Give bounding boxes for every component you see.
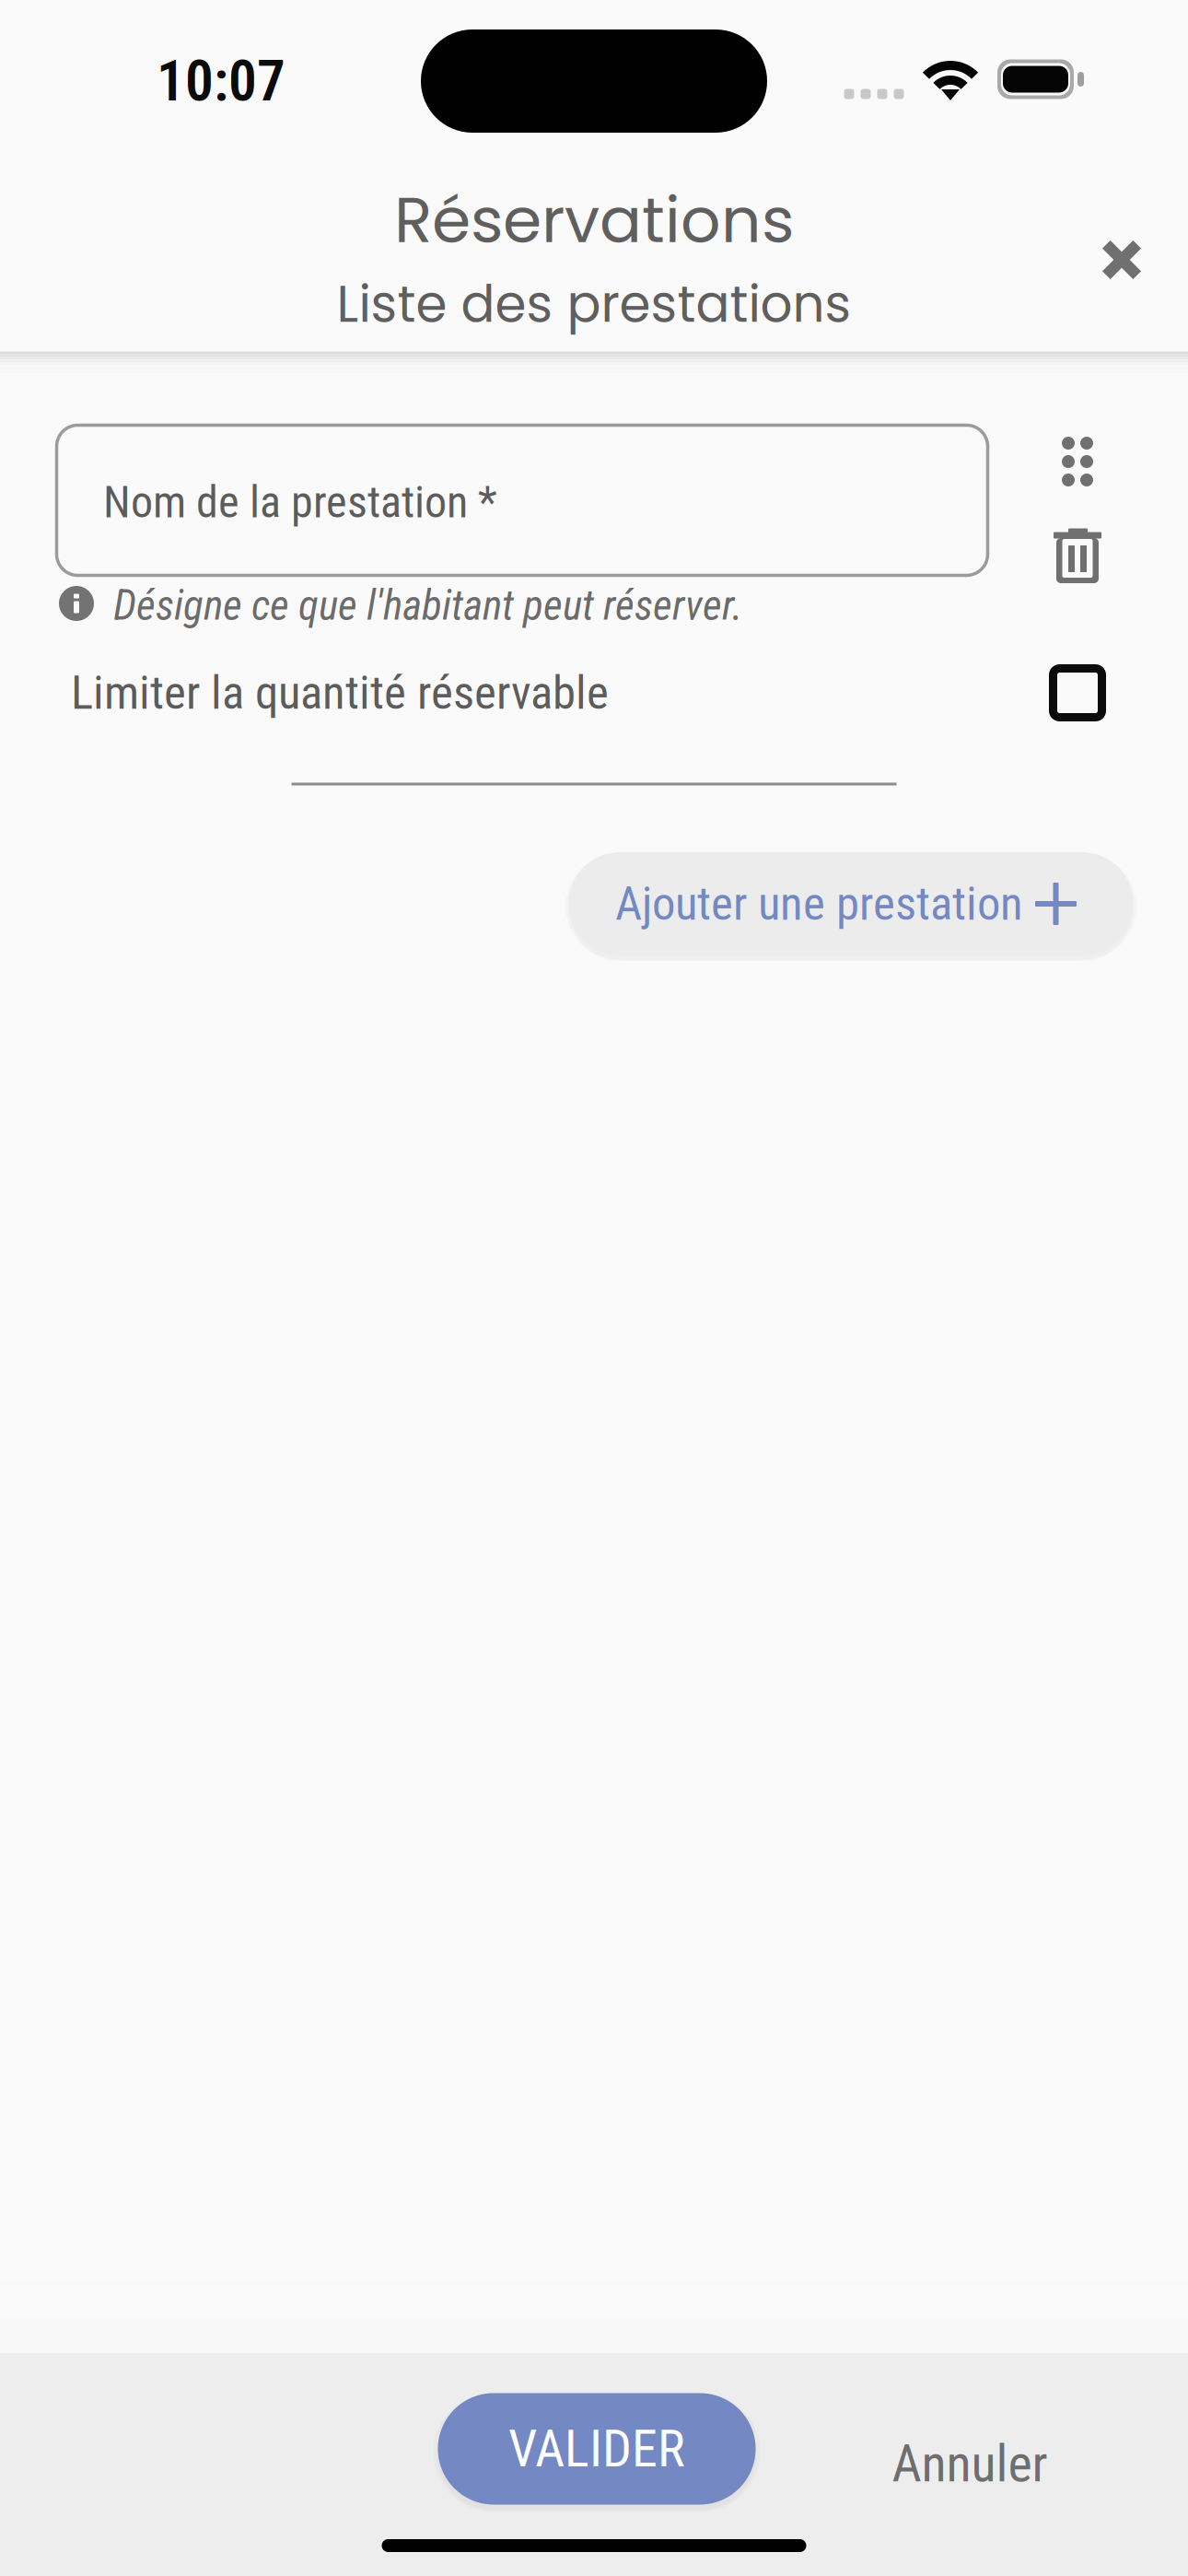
button[interactable]: Ajouter une prestation bbox=[569, 852, 1133, 955]
button[interactable]: Annuler bbox=[859, 2422, 1080, 2505]
staticText: Limiter la quantité réservable bbox=[71, 665, 609, 720]
button[interactable]: VALIDER bbox=[438, 2393, 756, 2505]
button[interactable]: Fermer bbox=[1062, 200, 1182, 320]
staticText: Réservations bbox=[394, 176, 794, 264]
button[interactable]: Réordonner bbox=[1033, 417, 1122, 506]
button[interactable]: Supprimer bbox=[1033, 511, 1122, 600]
staticText: Ajouter une prestation bbox=[615, 876, 1023, 931]
staticText: Désigne ce que l'habitant peut réserver. bbox=[113, 581, 743, 630]
staticText: 10:07 bbox=[157, 48, 285, 114]
staticText: Liste des prestations bbox=[337, 269, 851, 339]
staticText: Annuler bbox=[892, 2433, 1048, 2494]
button[interactable]: Limiter la quantité réservable bbox=[1033, 649, 1122, 737]
staticText: Nom de la prestation * bbox=[103, 476, 497, 528]
staticText: VALIDER bbox=[508, 2419, 685, 2479]
